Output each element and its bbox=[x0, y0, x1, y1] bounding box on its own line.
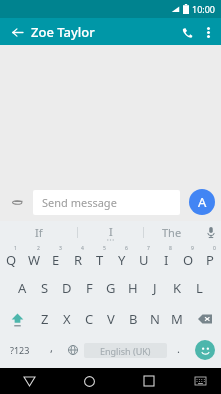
button[interactable]: Change language bbox=[62, 335, 84, 365]
button[interactable]: H bbox=[122, 273, 144, 303]
staticText: L bbox=[196, 279, 203, 297]
button[interactable]: . bbox=[167, 335, 189, 365]
staticText: D bbox=[62, 279, 72, 297]
staticText: A bbox=[198, 193, 207, 211]
staticText: W bbox=[28, 251, 41, 269]
staticText: 2 bbox=[37, 245, 40, 252]
staticText: 6 bbox=[125, 245, 128, 252]
staticText: 10:00 bbox=[192, 3, 216, 15]
staticText: ?123 bbox=[10, 344, 30, 356]
staticText: V bbox=[107, 310, 115, 328]
button[interactable]: G bbox=[100, 273, 122, 303]
button[interactable]: , bbox=[40, 335, 62, 365]
staticText: J bbox=[153, 279, 157, 297]
staticText: M bbox=[171, 310, 183, 328]
button[interactable]: 2 bbox=[23, 243, 45, 273]
staticText: 1 bbox=[14, 245, 17, 252]
button[interactable]: 7 bbox=[133, 243, 155, 273]
button[interactable]: If bbox=[0, 221, 77, 243]
staticText: H bbox=[128, 279, 138, 297]
button[interactable]: Shift bbox=[0, 303, 34, 335]
button[interactable]: J bbox=[144, 273, 166, 303]
button[interactable]: Voice input bbox=[200, 221, 221, 243]
button[interactable]: L bbox=[188, 273, 210, 303]
button[interactable]: 1 bbox=[0, 243, 23, 273]
staticText: Zoe Taylor bbox=[31, 23, 95, 41]
button[interactable]: 4 bbox=[67, 243, 89, 273]
button[interactable]: I bbox=[78, 221, 143, 243]
staticText: 8 bbox=[169, 245, 172, 252]
staticText: 3 bbox=[59, 245, 62, 252]
staticText: N bbox=[150, 310, 160, 328]
staticText: S bbox=[41, 279, 49, 297]
button[interactable]: B bbox=[122, 303, 144, 335]
staticText: , bbox=[50, 340, 53, 355]
staticText: Y bbox=[118, 251, 126, 269]
staticText: T bbox=[96, 251, 104, 269]
staticText: C bbox=[85, 310, 94, 328]
staticText: Q bbox=[6, 251, 17, 269]
button[interactable]: ?123 bbox=[0, 335, 40, 365]
button[interactable]: Send message bbox=[33, 190, 180, 215]
button[interactable]: Back bbox=[8, 23, 26, 41]
button[interactable]: The bbox=[144, 221, 200, 243]
button[interactable]: A bbox=[11, 273, 34, 303]
staticText: . bbox=[177, 341, 180, 356]
button[interactable]: C bbox=[78, 303, 100, 335]
staticText: E bbox=[52, 251, 60, 269]
button[interactable]: S bbox=[34, 273, 56, 303]
button[interactable]: 3 bbox=[45, 243, 67, 273]
button[interactable]: Home bbox=[59, 368, 119, 394]
button[interactable]: Attach bbox=[6, 191, 28, 213]
button[interactable]: X bbox=[56, 303, 78, 335]
staticText: The bbox=[162, 225, 182, 240]
button[interactable]: D bbox=[56, 273, 78, 303]
staticText: 7 bbox=[147, 245, 150, 252]
button[interactable]: Backspace bbox=[188, 303, 221, 335]
staticText: R bbox=[74, 251, 83, 269]
staticText: O bbox=[183, 251, 194, 269]
staticText: 4 bbox=[81, 245, 84, 252]
staticText: K bbox=[173, 279, 182, 297]
staticText: F bbox=[86, 279, 93, 297]
staticText: X bbox=[63, 310, 71, 328]
staticText: A bbox=[18, 279, 27, 297]
button[interactable]: English (UK) bbox=[84, 343, 167, 358]
staticText: If bbox=[35, 225, 43, 240]
button[interactable]: Call bbox=[176, 21, 198, 43]
button[interactable]: Send bbox=[189, 189, 215, 215]
button[interactable]: N bbox=[144, 303, 166, 335]
staticText: I bbox=[109, 224, 113, 239]
staticText: G bbox=[106, 279, 116, 297]
button[interactable]: Keyboard bbox=[179, 368, 221, 394]
button[interactable]: Emoji bbox=[189, 335, 221, 365]
staticText: Z bbox=[41, 310, 49, 328]
staticText: 0 bbox=[213, 245, 216, 252]
staticText: 5 bbox=[103, 245, 106, 252]
button[interactable]: Back bbox=[0, 368, 59, 394]
button[interactable]: Z bbox=[34, 303, 56, 335]
button[interactable]: 6 bbox=[111, 243, 133, 273]
staticText: I bbox=[164, 251, 169, 269]
button[interactable]: Recents bbox=[119, 368, 179, 394]
staticText: P bbox=[206, 251, 214, 269]
staticText: English (UK) bbox=[100, 345, 151, 357]
button[interactable]: 0 bbox=[199, 243, 221, 273]
button[interactable]: 9 bbox=[177, 243, 199, 273]
staticText: U bbox=[139, 251, 149, 269]
button[interactable]: 8 bbox=[155, 243, 177, 273]
staticText: Send message bbox=[42, 195, 117, 210]
button[interactable]: F bbox=[78, 273, 100, 303]
button[interactable]: V bbox=[100, 303, 122, 335]
staticText: 9 bbox=[191, 245, 194, 252]
button[interactable]: More options bbox=[198, 22, 218, 42]
button[interactable]: 5 bbox=[89, 243, 111, 273]
button[interactable]: K bbox=[166, 273, 188, 303]
button[interactable]: M bbox=[166, 303, 188, 335]
staticText: B bbox=[129, 310, 138, 328]
